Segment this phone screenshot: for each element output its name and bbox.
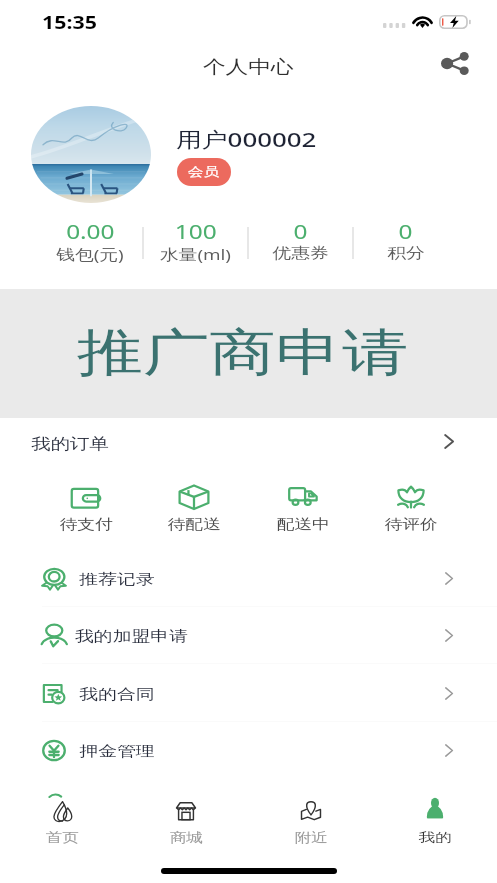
staticText: 配送中: [277, 515, 330, 533]
staticText: 优惠券: [272, 244, 329, 263]
button[interactable]: 押金管理: [0, 722, 497, 779]
staticText: 个人中心: [203, 55, 294, 78]
staticText: 我的加盟申请: [75, 627, 188, 645]
staticText: 100: [175, 218, 217, 245]
staticText: 押金管理: [79, 742, 155, 760]
staticText: 待评价: [385, 515, 438, 533]
staticText: 0: [398, 218, 413, 245]
staticText: 推荐记录: [79, 570, 155, 588]
staticText: 0: [293, 218, 308, 245]
button[interactable]: 我的: [373, 790, 497, 850]
button[interactable]: 待评价: [357, 474, 465, 536]
button[interactable]: Share: [434, 44, 476, 82]
button[interactable]: 会员: [177, 158, 231, 186]
staticText: 积分: [387, 244, 425, 263]
staticText: 首页: [46, 829, 79, 846]
staticText: 会员: [188, 164, 220, 180]
staticText: 水量(ml): [160, 244, 231, 264]
staticText: 我的订单: [31, 434, 110, 454]
button[interactable]: 商城: [124, 790, 248, 850]
button[interactable]: 0: [353, 210, 458, 278]
button[interactable]: 推荐记录: [0, 550, 497, 607]
staticText: 我的合同: [79, 685, 155, 703]
staticText: 商城: [170, 829, 203, 846]
staticText: 我的: [419, 829, 452, 846]
button[interactable]: 待支付: [32, 474, 140, 536]
button[interactable]: 0.00: [38, 210, 143, 278]
staticText: 钱包(元): [56, 244, 125, 264]
button[interactable]: 0: [248, 210, 353, 278]
staticText: 0.00: [66, 218, 115, 245]
button[interactable]: 推广商申请: [0, 289, 497, 418]
staticText: 用户000002: [176, 125, 317, 153]
button[interactable]: 我的加盟申请: [0, 607, 497, 664]
button[interactable]: 配送中: [249, 474, 357, 536]
button[interactable]: 首页: [0, 790, 124, 850]
button[interactable]: 我的合同: [0, 665, 497, 722]
staticText: 待配送: [168, 515, 221, 533]
staticText: 附近: [295, 829, 328, 846]
button[interactable]: Avatar: [31, 106, 151, 203]
staticText: 待支付: [60, 515, 113, 533]
button[interactable]: 附近: [249, 790, 373, 850]
button[interactable]: 待配送: [140, 474, 248, 536]
staticText: 推广商申请: [77, 321, 408, 385]
staticText: 15:35: [42, 10, 97, 34]
button[interactable]: 我的订单: [0, 418, 497, 466]
button[interactable]: 100: [143, 210, 248, 278]
